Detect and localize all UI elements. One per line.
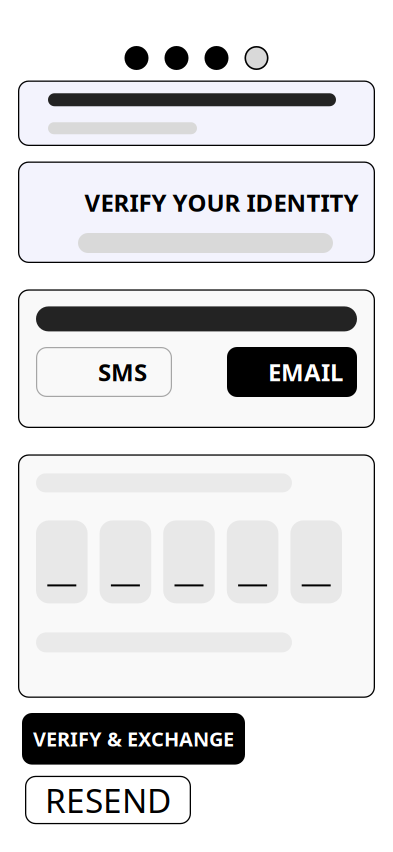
button[interactable]: EMAIL: [227, 347, 357, 397]
staticText: SMS: [98, 356, 147, 388]
staticText: VERIFY YOUR IDENTITY: [84, 186, 358, 218]
staticText: RESEND: [45, 778, 171, 822]
button[interactable]: SMS: [36, 347, 172, 397]
staticText: EMAIL: [268, 356, 343, 388]
staticText: VERIFY & EXCHANGE: [33, 725, 234, 752]
button[interactable]: RESEND: [25, 776, 191, 824]
button[interactable]: VERIFY & EXCHANGE: [22, 713, 245, 765]
